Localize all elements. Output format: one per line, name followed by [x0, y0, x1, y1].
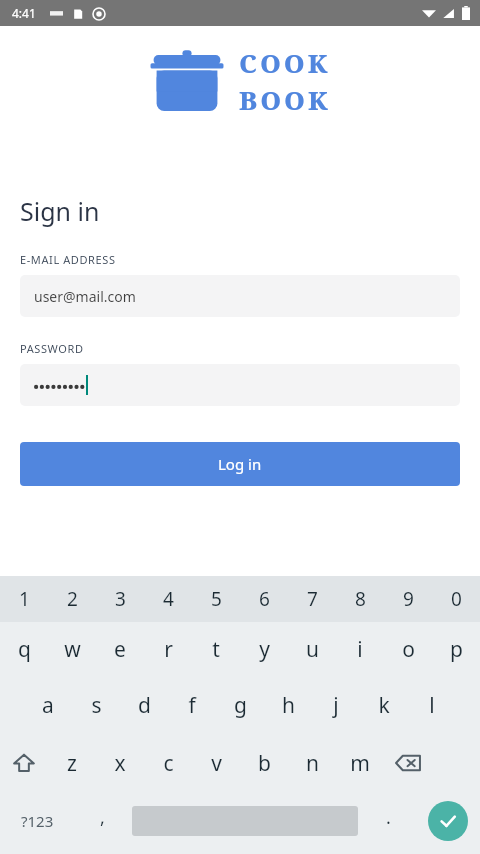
- button[interactable]: o: [384, 622, 432, 676]
- staticText: 6: [259, 586, 270, 612]
- staticText: ,: [100, 805, 105, 830]
- button[interactable]: w: [48, 622, 96, 676]
- staticText: y: [259, 635, 270, 664]
- staticText: w: [64, 635, 81, 664]
- button[interactable]: Shift: [0, 734, 48, 792]
- button[interactable]: i: [336, 622, 384, 676]
- button[interactable]: 3: [96, 576, 144, 622]
- staticText: 0: [451, 586, 462, 612]
- staticText: 8: [355, 586, 366, 612]
- staticText: m: [350, 749, 370, 778]
- staticText: 5: [211, 586, 222, 612]
- staticText: ?123: [21, 811, 54, 831]
- staticText: PASSWORD: [20, 341, 84, 356]
- button[interactable]: [20, 364, 460, 406]
- staticText: c: [163, 749, 174, 778]
- button[interactable]: k: [360, 676, 408, 734]
- staticText: r: [164, 635, 173, 664]
- staticText: x: [114, 749, 126, 778]
- staticText: v: [211, 749, 222, 778]
- button[interactable]: 5: [192, 576, 240, 622]
- staticText: s: [91, 691, 102, 720]
- button[interactable]: 4: [144, 576, 192, 622]
- button[interactable]: r: [144, 622, 192, 676]
- staticText: u: [306, 635, 319, 664]
- button[interactable]: 1: [0, 576, 48, 622]
- staticText: j: [333, 691, 339, 720]
- staticText: 4: [163, 586, 174, 612]
- button[interactable]: j: [312, 676, 360, 734]
- button[interactable]: z: [48, 734, 96, 792]
- staticText: E-MAIL ADDRESS: [20, 252, 116, 267]
- button[interactable]: 0: [432, 576, 480, 622]
- button[interactable]: Log in: [20, 442, 460, 486]
- button[interactable]: g: [216, 676, 264, 734]
- button[interactable]: 9: [384, 576, 432, 622]
- staticText: f: [188, 691, 196, 720]
- staticText: d: [138, 691, 151, 720]
- button[interactable]: y: [240, 622, 288, 676]
- staticText: h: [282, 691, 295, 720]
- staticText: 1: [19, 586, 30, 612]
- button[interactable]: x: [96, 734, 144, 792]
- staticText: 4:41: [12, 5, 36, 21]
- button[interactable]: ,: [74, 792, 130, 850]
- button[interactable]: 2: [48, 576, 96, 622]
- button[interactable]: f: [168, 676, 216, 734]
- staticText: g: [234, 691, 247, 720]
- staticText: BOOK: [239, 82, 331, 117]
- staticText: o: [402, 635, 415, 664]
- staticText: n: [306, 749, 319, 778]
- staticText: p: [450, 635, 463, 664]
- button[interactable]: p: [432, 622, 480, 676]
- button[interactable]: s: [72, 676, 120, 734]
- button[interactable]: l: [408, 676, 456, 734]
- staticText: user@mail.com: [34, 287, 136, 306]
- staticText: i: [357, 635, 363, 664]
- button[interactable]: d: [120, 676, 168, 734]
- button[interactable]: v: [192, 734, 240, 792]
- button[interactable]: 8: [336, 576, 384, 622]
- staticText: Sign in: [20, 194, 100, 228]
- button[interactable]: u: [288, 622, 336, 676]
- button[interactable]: q: [0, 622, 48, 676]
- button[interactable]: c: [144, 734, 192, 792]
- staticText: .: [386, 805, 391, 830]
- button[interactable]: e: [96, 622, 144, 676]
- staticText: 9: [403, 586, 414, 612]
- button[interactable]: ?123: [0, 792, 74, 850]
- button[interactable]: .: [360, 792, 416, 850]
- staticText: Log in: [218, 454, 262, 474]
- staticText: e: [114, 635, 126, 664]
- button[interactable]: n: [288, 734, 336, 792]
- staticText: 7: [307, 586, 318, 612]
- staticText: q: [18, 635, 31, 664]
- staticText: 2: [67, 586, 78, 612]
- button[interactable]: h: [264, 676, 312, 734]
- staticText: l: [429, 691, 435, 720]
- staticText: z: [67, 749, 77, 778]
- button[interactable]: 7: [288, 576, 336, 622]
- staticText: a: [42, 691, 54, 720]
- button[interactable]: 6: [240, 576, 288, 622]
- staticText: 3: [115, 586, 126, 612]
- staticText: t: [212, 635, 220, 664]
- button[interactable]: user@mail.com: [20, 275, 460, 317]
- staticText: k: [378, 691, 390, 720]
- button[interactable]: Backspace: [384, 734, 432, 792]
- button[interactable]: a: [24, 676, 72, 734]
- staticText: COOK: [239, 45, 331, 80]
- button[interactable]: t: [192, 622, 240, 676]
- button[interactable]: b: [240, 734, 288, 792]
- staticText: b: [258, 749, 271, 778]
- button[interactable]: Enter: [428, 801, 468, 841]
- button[interactable]: m: [336, 734, 384, 792]
